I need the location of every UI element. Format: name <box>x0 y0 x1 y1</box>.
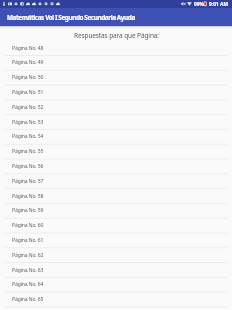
staticText: Página No. 58 <box>12 193 44 200</box>
staticText: Página No. 56 <box>12 163 44 170</box>
staticText: Página No. 49 <box>12 59 44 66</box>
staticText: Respuestas para que Página: <box>74 31 159 40</box>
button[interactable]: Página No. 61 <box>0 233 232 248</box>
button[interactable]: Página No. 59 <box>0 203 232 218</box>
staticText: Página No. 60 <box>12 222 44 229</box>
button[interactable]: Página No. 57 <box>0 174 232 189</box>
button[interactable]: Página No. 56 <box>0 159 232 174</box>
button[interactable]: Página No. 54 <box>0 129 232 144</box>
button[interactable]: Página No. 48 <box>0 41 232 56</box>
button[interactable]: Página No. 63 <box>0 263 232 278</box>
staticText: Página No. 52 <box>12 104 44 111</box>
staticText: Página No. 57 <box>12 178 44 185</box>
button[interactable]: Página No. 65 <box>0 292 232 307</box>
staticText: Página No. 63 <box>12 267 44 274</box>
staticText: Página No. 51 <box>12 89 44 96</box>
staticText: Página No. 59 <box>12 207 44 214</box>
staticText: Página No. 53 <box>12 119 44 126</box>
staticText: Página No. 61 <box>12 237 44 244</box>
button[interactable]: Página No. 55 <box>0 144 232 159</box>
button[interactable]: Página No. 62 <box>0 248 232 263</box>
button[interactable]: Página No. 53 <box>0 115 232 130</box>
button[interactable]: Página No. 51 <box>0 85 232 100</box>
button[interactable]: Página No. 52 <box>0 100 232 115</box>
staticText: Página No. 48 <box>12 45 44 52</box>
button[interactable]: Página No. 58 <box>0 189 232 204</box>
button[interactable]: Página No. 50 <box>0 70 232 85</box>
staticText: Página No. 55 <box>12 148 44 155</box>
staticText: Matemáticas Vol I Segundo Secundaria Ayu… <box>7 13 135 22</box>
staticText: Página No. 65 <box>12 296 44 303</box>
button[interactable]: Página No. 60 <box>0 218 232 233</box>
button[interactable]: Página No. 49 <box>0 55 232 70</box>
staticText: 99% <box>194 1 205 8</box>
staticText: Página No. 62 <box>12 252 44 259</box>
staticText: Página No. 50 <box>12 74 44 81</box>
button[interactable]: Página No. 64 <box>0 277 232 292</box>
staticText: Página No. 64 <box>12 281 44 288</box>
staticText: 9:01 AM <box>209 1 229 8</box>
staticText: Página No. 54 <box>12 133 44 140</box>
